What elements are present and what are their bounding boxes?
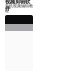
staticText: 视频剪辑软件 bbox=[5, 0, 30, 12]
staticText: 手机视频编辑教程 bbox=[5, 3, 33, 14]
